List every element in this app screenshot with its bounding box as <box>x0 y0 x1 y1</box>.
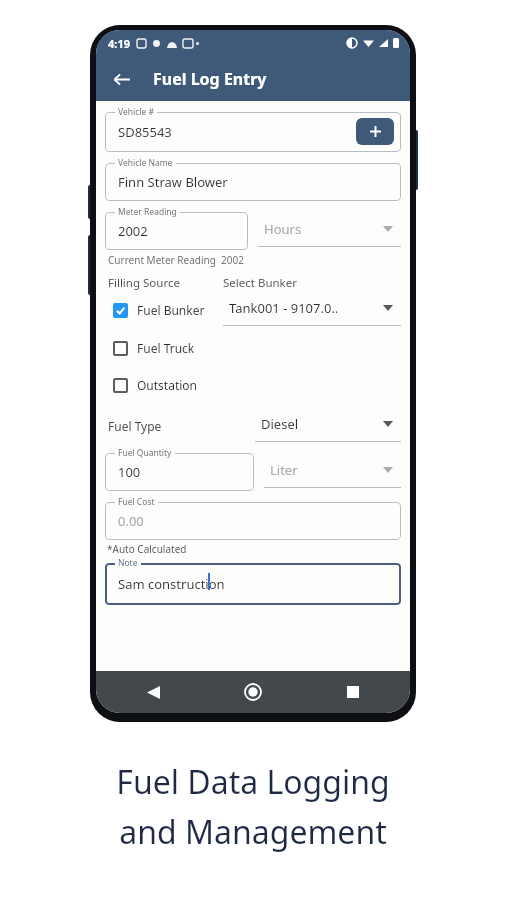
button[interactable]: Back <box>104 62 138 96</box>
button[interactable] <box>105 163 401 201</box>
staticText: Fuel Truck <box>137 340 195 356</box>
button[interactable]: Outstation <box>113 370 198 400</box>
button[interactable]: Tank001 - 9107.0.. <box>223 294 401 326</box>
staticText: Fuel Quantity <box>118 447 172 459</box>
staticText: Fuel Log Entry <box>153 68 267 90</box>
staticText: 4:19 <box>108 36 130 51</box>
staticText: Diesel <box>261 415 299 433</box>
staticText: *Auto Calculated <box>107 542 187 556</box>
button[interactable]: Fuel Truck <box>113 333 195 363</box>
staticText: Hours <box>264 220 302 238</box>
button[interactable]: Hours <box>258 215 401 247</box>
staticText: and Management <box>119 810 387 854</box>
staticText: Filling Source <box>108 275 223 291</box>
button[interactable]: Recents <box>336 675 370 709</box>
button[interactable]: Diesel <box>255 410 401 442</box>
staticText: Fuel Data Logging <box>116 760 390 804</box>
staticText: Liter <box>270 461 298 479</box>
button[interactable]: Add vehicle <box>356 118 394 145</box>
button[interactable] <box>105 453 254 491</box>
button[interactable] <box>105 502 401 540</box>
staticText: Fuel Cost <box>118 496 155 508</box>
button[interactable]: Home <box>236 675 270 709</box>
staticText: Outstation <box>137 377 198 393</box>
button[interactable]: Liter <box>264 456 401 488</box>
staticText: Current Meter Reading 2002 <box>108 253 244 267</box>
staticText: Sam construction <box>118 575 225 593</box>
staticText: SD85543 <box>118 123 172 141</box>
staticText: Fuel Type <box>108 418 255 434</box>
staticText: Vehicle # <box>118 106 154 118</box>
staticText: 0.00 <box>118 512 144 530</box>
button[interactable] <box>105 112 401 152</box>
button[interactable]: Fuel Bunker <box>113 295 205 325</box>
staticText: 2002 <box>118 222 148 240</box>
staticText: Meter Reading <box>118 206 177 218</box>
staticText: Vehicle Name <box>118 157 173 169</box>
staticText: Tank001 - 9107.0.. <box>229 299 339 317</box>
button[interactable] <box>105 212 248 250</box>
staticText: Select Bunker <box>223 275 297 291</box>
button[interactable] <box>105 563 401 605</box>
button[interactable]: Back <box>136 675 170 709</box>
staticText: Note <box>118 557 138 569</box>
staticText: 100 <box>118 463 141 481</box>
staticText: Finn Straw Blower <box>118 173 228 191</box>
staticText: Fuel Bunker <box>137 302 205 318</box>
